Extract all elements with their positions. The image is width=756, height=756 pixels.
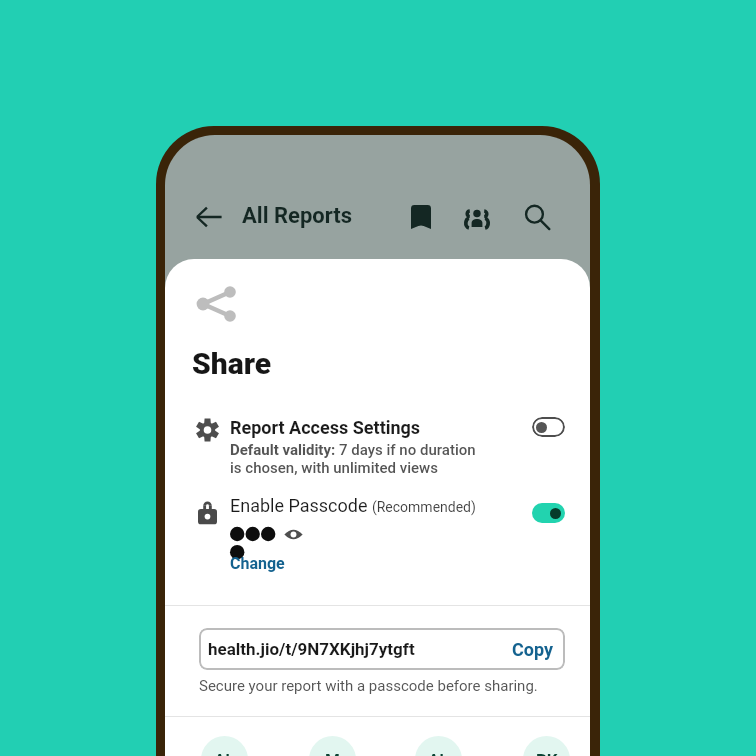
button[interactable]: Copy — [512, 639, 554, 660]
button[interactable]: Change — [230, 554, 285, 573]
staticText: RK — [536, 750, 558, 756]
staticText: Ak — [428, 750, 449, 756]
staticText: Default validity: 7 days if no duration … — [230, 441, 476, 477]
button[interactable]: Search — [515, 195, 559, 239]
button[interactable]: health.jio/t/9N7XKjhj7ytgft — [199, 628, 565, 670]
staticText: Report Access Settings — [230, 417, 421, 438]
staticText: M — [325, 750, 340, 756]
button[interactable]: RK — [510, 736, 582, 756]
button[interactable]: Switch off — [532, 417, 565, 437]
staticText: All Reports — [242, 203, 353, 229]
staticText: Share — [192, 346, 272, 381]
button[interactable]: Ab — [188, 736, 260, 756]
button[interactable]: M — [296, 736, 368, 756]
button[interactable]: Switch on — [532, 503, 565, 523]
button[interactable]: Shared with people — [455, 195, 499, 239]
staticText: health.jio/t/9N7XKjhj7ytgft — [208, 639, 415, 659]
button[interactable]: Bookmark — [399, 195, 443, 239]
staticText: Enable Passcode (Recommended) — [230, 495, 476, 516]
button[interactable]: Back — [187, 195, 231, 239]
staticText: Ab — [214, 750, 236, 756]
button[interactable]: Show passcode — [284, 528, 303, 541]
button[interactable]: Ak — [402, 736, 474, 756]
button[interactable]: Enable Passcode (Recommended) — [165, 495, 590, 576]
staticText: Secure your report with a passcode befor… — [199, 677, 538, 695]
button[interactable]: Report Access Settings — [165, 417, 590, 477]
